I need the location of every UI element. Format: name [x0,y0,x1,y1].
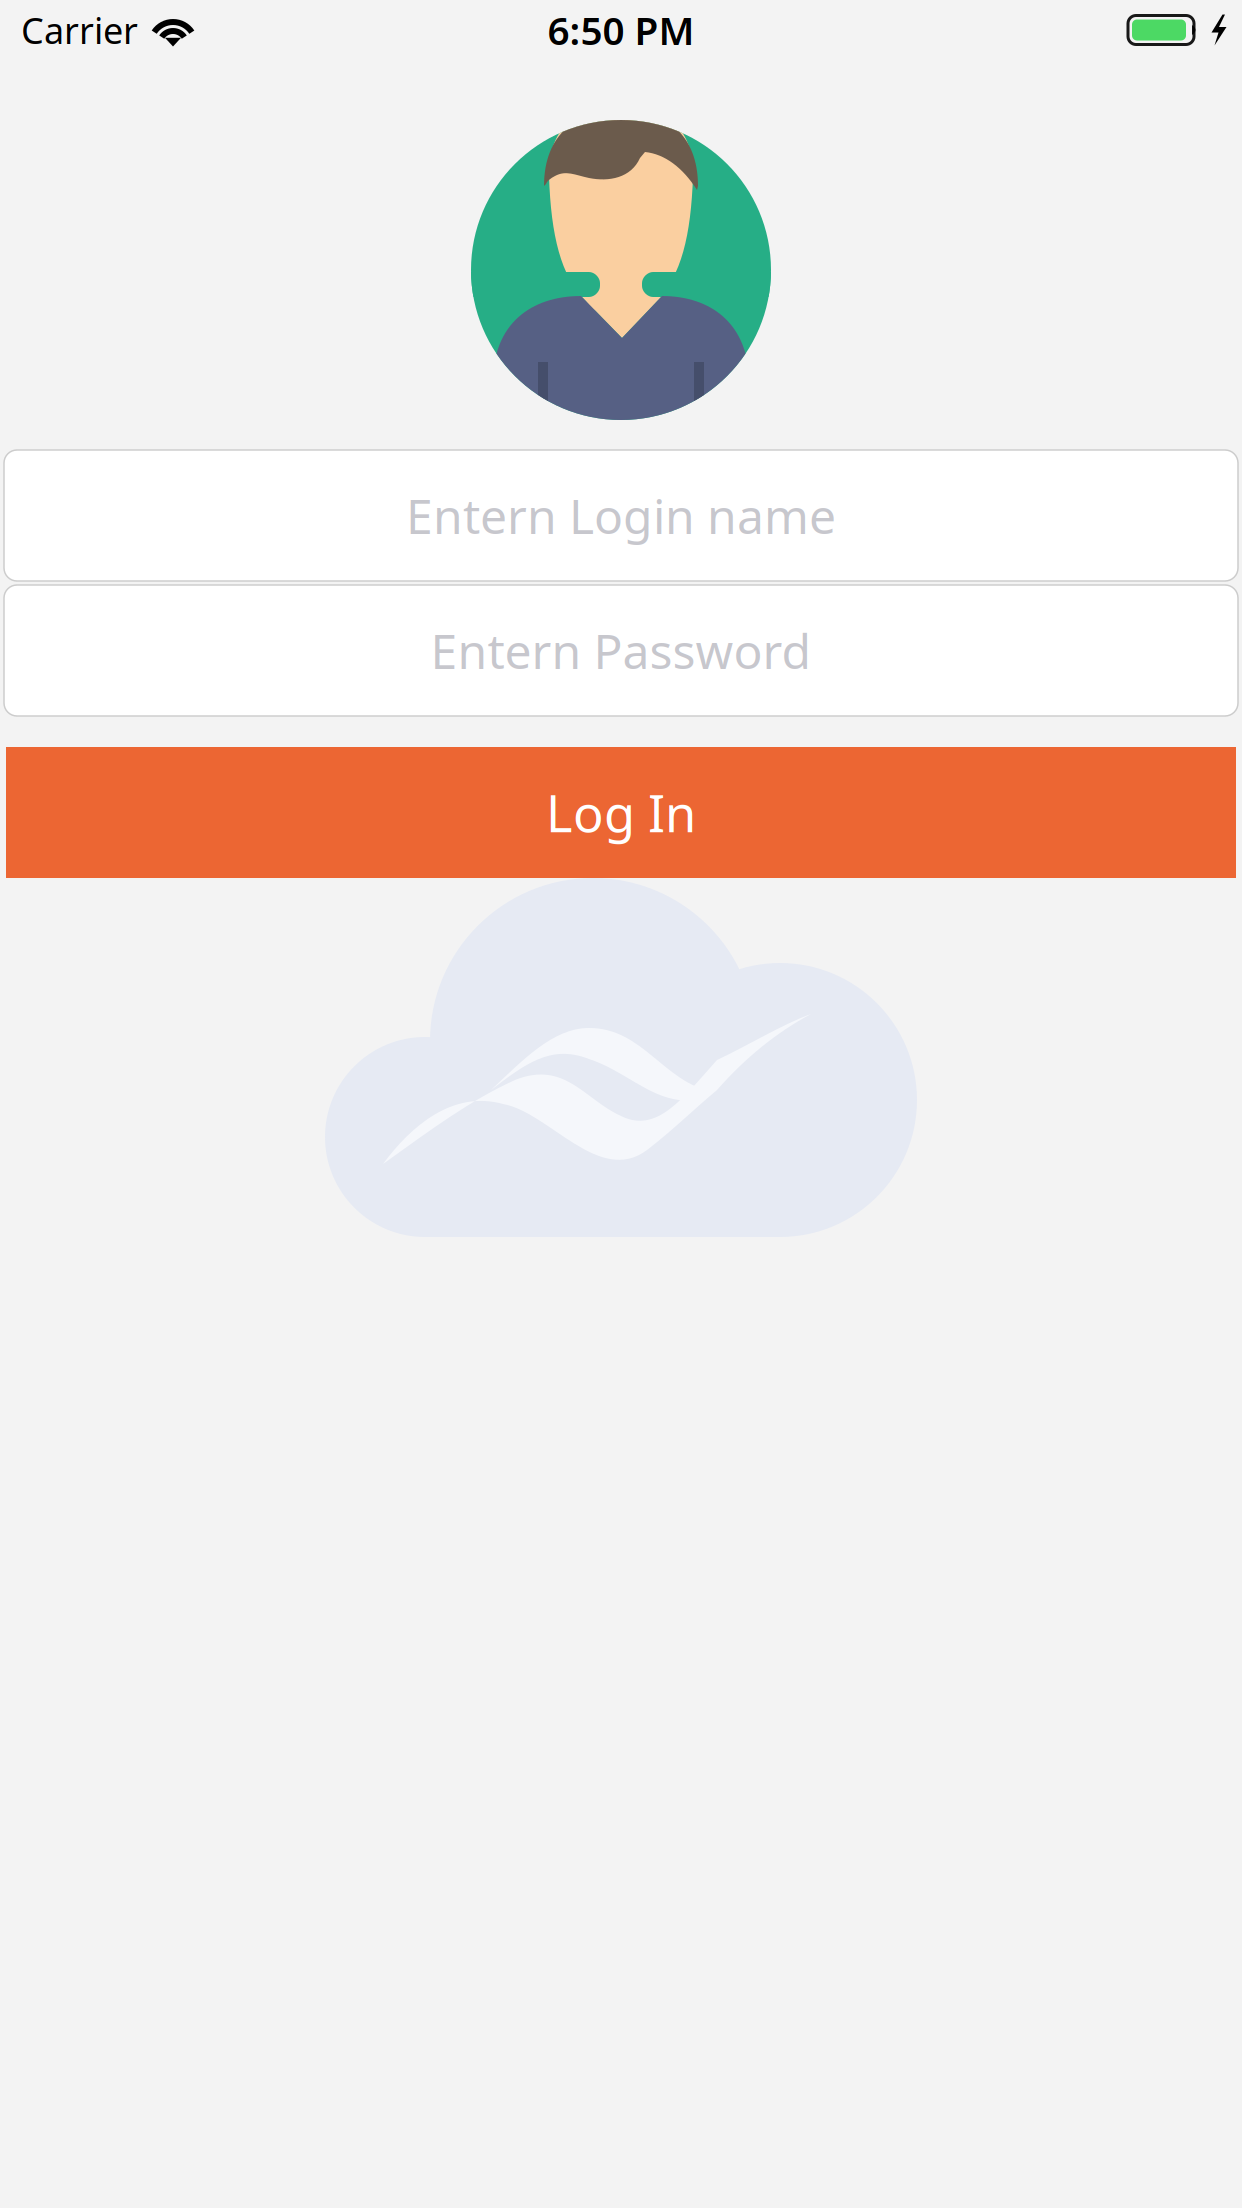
staticText: Entern Login name [406,484,836,547]
staticText: 6:50 PM [547,4,694,56]
staticText: Entern Password [430,619,811,682]
button[interactable]: Entern Password [0,585,1242,716]
staticText: Carrier [21,6,138,54]
staticText: Log In [546,779,696,846]
button[interactable]: Entern Login name [0,450,1242,581]
button[interactable]: Log In [0,747,1242,878]
